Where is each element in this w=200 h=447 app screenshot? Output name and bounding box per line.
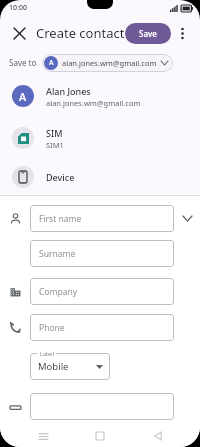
staticText: Surname	[39, 248, 76, 260]
button[interactable]: SIM	[0, 117, 200, 159]
staticText: Phone	[39, 322, 65, 334]
staticText: SIM1	[46, 140, 64, 150]
staticText: Create contact	[36, 24, 125, 42]
button[interactable]: A	[0, 75, 200, 117]
button[interactable]: Home	[85, 425, 115, 447]
button[interactable]: Expand name fields	[174, 203, 200, 233]
button[interactable]: Close	[6, 20, 32, 46]
staticText: Device	[46, 171, 75, 183]
button[interactable]: Save	[125, 23, 171, 44]
button[interactable]: A	[42, 54, 173, 72]
button[interactable]: More options	[171, 21, 194, 45]
staticText: Save to	[9, 57, 37, 68]
staticText: Alan Jones	[46, 85, 91, 97]
staticText: Mobile	[38, 360, 69, 373]
staticText: Label	[40, 350, 54, 357]
button[interactable]: Back	[143, 425, 173, 447]
staticText: First name	[39, 213, 82, 225]
staticText: Company	[39, 286, 78, 298]
staticText: alan.jones.wm@gmail.com	[46, 98, 141, 108]
staticText: A	[19, 89, 27, 104]
button[interactable]: First name	[30, 205, 174, 232]
staticText: Save	[139, 28, 157, 39]
button[interactable]	[30, 353, 110, 380]
staticText: 10:00	[9, 3, 27, 13]
button[interactable]: Recent apps	[28, 425, 58, 447]
button[interactable]: Surname	[30, 240, 174, 267]
staticText: SIM	[46, 127, 63, 139]
button[interactable]: Company	[30, 278, 174, 305]
button[interactable]: Phone	[30, 314, 174, 341]
button[interactable]	[30, 393, 174, 420]
button[interactable]: Device	[0, 159, 200, 195]
staticText: alan.jones.wm@gmail.com	[62, 58, 157, 68]
staticText: A	[49, 58, 54, 68]
